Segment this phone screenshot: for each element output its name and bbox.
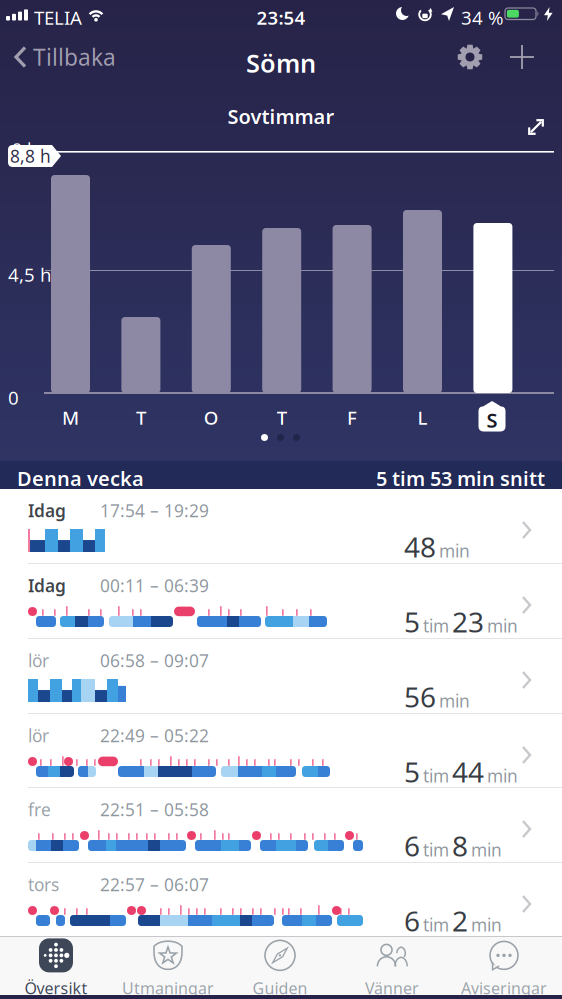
staticText: 2 [452, 902, 468, 939]
staticText: TELIA [34, 5, 82, 30]
staticText: 00:11 – 06:39 [100, 574, 209, 597]
staticText: fre [28, 798, 51, 821]
staticText: lör [28, 649, 49, 672]
button[interactable]: Settings [457, 44, 483, 70]
staticText: Sovtimmar [227, 103, 334, 130]
staticText: 48 [404, 528, 436, 565]
staticText: Vänner [365, 977, 419, 999]
staticText: Idag [28, 574, 66, 597]
staticText: min [471, 838, 502, 861]
button[interactable]: Översikt [0, 939, 112, 997]
staticText: Översikt [24, 977, 87, 999]
staticText: 8 [452, 827, 468, 864]
staticText: 5 [404, 753, 420, 790]
button[interactable]: Expand chart [527, 118, 545, 136]
staticText: 17:54 – 19:29 [100, 499, 209, 522]
staticText: min [487, 764, 518, 787]
staticText: S [486, 407, 497, 433]
button[interactable]: Utmaningar [112, 939, 224, 997]
staticText: 06:58 – 09:07 [100, 649, 209, 672]
button[interactable]: Aviseringar [448, 939, 560, 997]
staticText: 0 [8, 385, 19, 410]
staticText: M [62, 405, 79, 430]
button[interactable]: Tillbaka [14, 42, 116, 72]
staticText: F [347, 405, 357, 430]
staticText: min [471, 913, 502, 936]
staticText: 23 [452, 603, 484, 640]
button[interactable]: lör [0, 714, 562, 788]
staticText: 23:54 [256, 5, 305, 30]
staticText: L [417, 405, 427, 430]
staticText: Guiden [252, 977, 307, 999]
staticText: min [439, 689, 470, 712]
staticText: 8 h [12, 138, 38, 161]
button[interactable]: Vänner [336, 939, 448, 997]
staticText: T [277, 405, 287, 430]
staticText: O [204, 405, 219, 430]
button[interactable]: Idag [0, 489, 562, 564]
staticText: 34 % [461, 5, 504, 30]
staticText: min [439, 539, 470, 562]
staticText: min [487, 614, 518, 637]
staticText: Idag [28, 499, 66, 522]
button[interactable]: tors [0, 863, 562, 938]
staticText: Aviseringar [461, 977, 547, 999]
staticText: 6 [404, 902, 420, 939]
staticText: 5 tim 53 min snitt [376, 465, 545, 492]
button[interactable]: Guiden [224, 939, 336, 997]
staticText: 56 [404, 678, 436, 715]
button[interactable]: Idag [0, 564, 562, 639]
button[interactable]: Add [510, 45, 534, 69]
staticText: Tillbaka [33, 42, 116, 72]
staticText: 6 [404, 827, 420, 864]
staticText: tors [28, 873, 59, 896]
staticText: Utmaningar [122, 977, 214, 999]
staticText: tim [423, 614, 449, 637]
staticText: 5 [404, 603, 420, 640]
staticText: tim [423, 913, 449, 936]
button[interactable]: lör [0, 639, 562, 714]
staticText: T [136, 405, 146, 430]
staticText: 8,8 h [10, 144, 51, 167]
staticText: Denna vecka [17, 465, 144, 492]
staticText: 4,5 h [8, 262, 52, 287]
staticText: lör [28, 724, 49, 747]
staticText: 22:51 – 05:58 [100, 798, 209, 821]
staticText: tim [423, 764, 449, 787]
staticText: tim [423, 838, 449, 861]
button[interactable]: fre [0, 788, 562, 863]
staticText: Sömn [246, 46, 316, 80]
staticText: 22:57 – 06:07 [100, 873, 209, 896]
staticText: 22:49 – 05:22 [100, 724, 209, 747]
staticText: 44 [452, 753, 484, 790]
